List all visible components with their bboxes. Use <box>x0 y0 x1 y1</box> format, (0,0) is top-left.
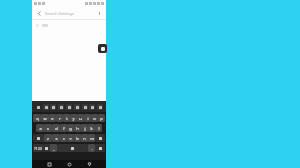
button[interactable]: Back <box>35 9 43 17</box>
button[interactable]: e <box>49 114 56 122</box>
button[interactable]: f <box>60 124 67 132</box>
button[interactable]: m <box>88 134 95 142</box>
staticText: ?123 <box>34 146 42 151</box>
button[interactable]: Toolbar item 4 <box>66 104 72 110</box>
staticText: . <box>91 146 93 151</box>
staticText: l <box>98 126 100 131</box>
staticText: o <box>93 116 96 121</box>
button[interactable]: b <box>74 134 81 142</box>
staticText: p <box>100 116 103 121</box>
button[interactable]: r <box>56 114 63 122</box>
staticText: h <box>76 126 79 131</box>
button[interactable]: Key <box>43 144 50 152</box>
button[interactable]: l <box>95 124 102 132</box>
staticText: z <box>47 136 49 141</box>
button[interactable]: Home <box>66 161 72 167</box>
staticText: y <box>72 116 75 121</box>
button[interactable]: w <box>41 114 49 122</box>
button[interactable]: Toolbar item 8 <box>97 104 103 110</box>
staticText: t <box>66 116 68 121</box>
button[interactable]: Key <box>95 134 105 142</box>
staticText: i <box>87 116 89 121</box>
button[interactable]: k <box>88 124 95 132</box>
staticText: s <box>47 126 49 131</box>
button[interactable]: , <box>50 144 57 152</box>
button[interactable]: c <box>60 134 67 142</box>
button[interactable]: Toolbar item 7 <box>89 104 95 110</box>
button[interactable]: o <box>91 114 98 122</box>
button[interactable]: Toolbar item 2 <box>50 104 56 110</box>
button[interactable]: Back <box>86 161 92 167</box>
button[interactable]: t <box>63 114 70 122</box>
button[interactable]: Key <box>33 134 44 142</box>
staticText: b <box>76 136 79 141</box>
button[interactable]: u <box>77 114 84 122</box>
button[interactable]: d <box>52 124 60 132</box>
button[interactable]: s <box>44 124 52 132</box>
staticText: , <box>53 146 55 151</box>
staticText: a <box>39 126 42 131</box>
button[interactable]: p <box>98 114 105 122</box>
staticText: j <box>84 126 86 131</box>
button[interactable]: More options <box>96 8 103 18</box>
button[interactable]: v <box>67 134 74 142</box>
button[interactable]: y <box>70 114 77 122</box>
staticText: d <box>55 126 58 131</box>
staticText: Search Settings <box>45 11 74 16</box>
button[interactable]: n <box>81 134 88 142</box>
staticText: q <box>36 116 39 121</box>
button[interactable]: j <box>81 124 88 132</box>
button[interactable]: Floating bubble <box>98 44 107 53</box>
staticText: u <box>79 116 82 121</box>
button[interactable]: h <box>74 124 81 132</box>
button[interactable]: Toolbar item 1 <box>43 104 49 110</box>
button[interactable]: x <box>52 134 60 142</box>
button[interactable]: q <box>33 114 41 122</box>
button[interactable]: a <box>36 124 44 132</box>
staticText: n <box>83 136 86 141</box>
button[interactable]: Toolbar item 6 <box>82 104 88 110</box>
button[interactable]: Search Settings <box>45 9 96 18</box>
staticText: r <box>59 116 61 121</box>
button[interactable]: g <box>67 124 74 132</box>
button[interactable]: Toolbar item 3 <box>58 104 64 110</box>
button[interactable]: . <box>88 144 95 152</box>
staticText: x <box>55 136 58 141</box>
staticText: m <box>90 136 94 141</box>
button[interactable]: Key <box>57 144 88 152</box>
staticText: g <box>69 126 72 131</box>
staticText: k <box>90 126 93 131</box>
staticText: f <box>63 126 65 131</box>
button[interactable]: Recents <box>46 161 52 167</box>
staticText: w <box>43 116 47 121</box>
button[interactable]: Key <box>95 144 105 152</box>
staticText: c <box>63 136 65 141</box>
staticText: e <box>51 116 54 121</box>
button[interactable]: Toolbar item 0 <box>35 104 41 110</box>
button[interactable]: z <box>44 134 52 142</box>
staticText: v <box>69 136 72 141</box>
button[interactable]: i <box>84 114 91 122</box>
button[interactable]: Toolbar item 5 <box>74 104 80 110</box>
button[interactable]: ?123 <box>33 144 43 152</box>
